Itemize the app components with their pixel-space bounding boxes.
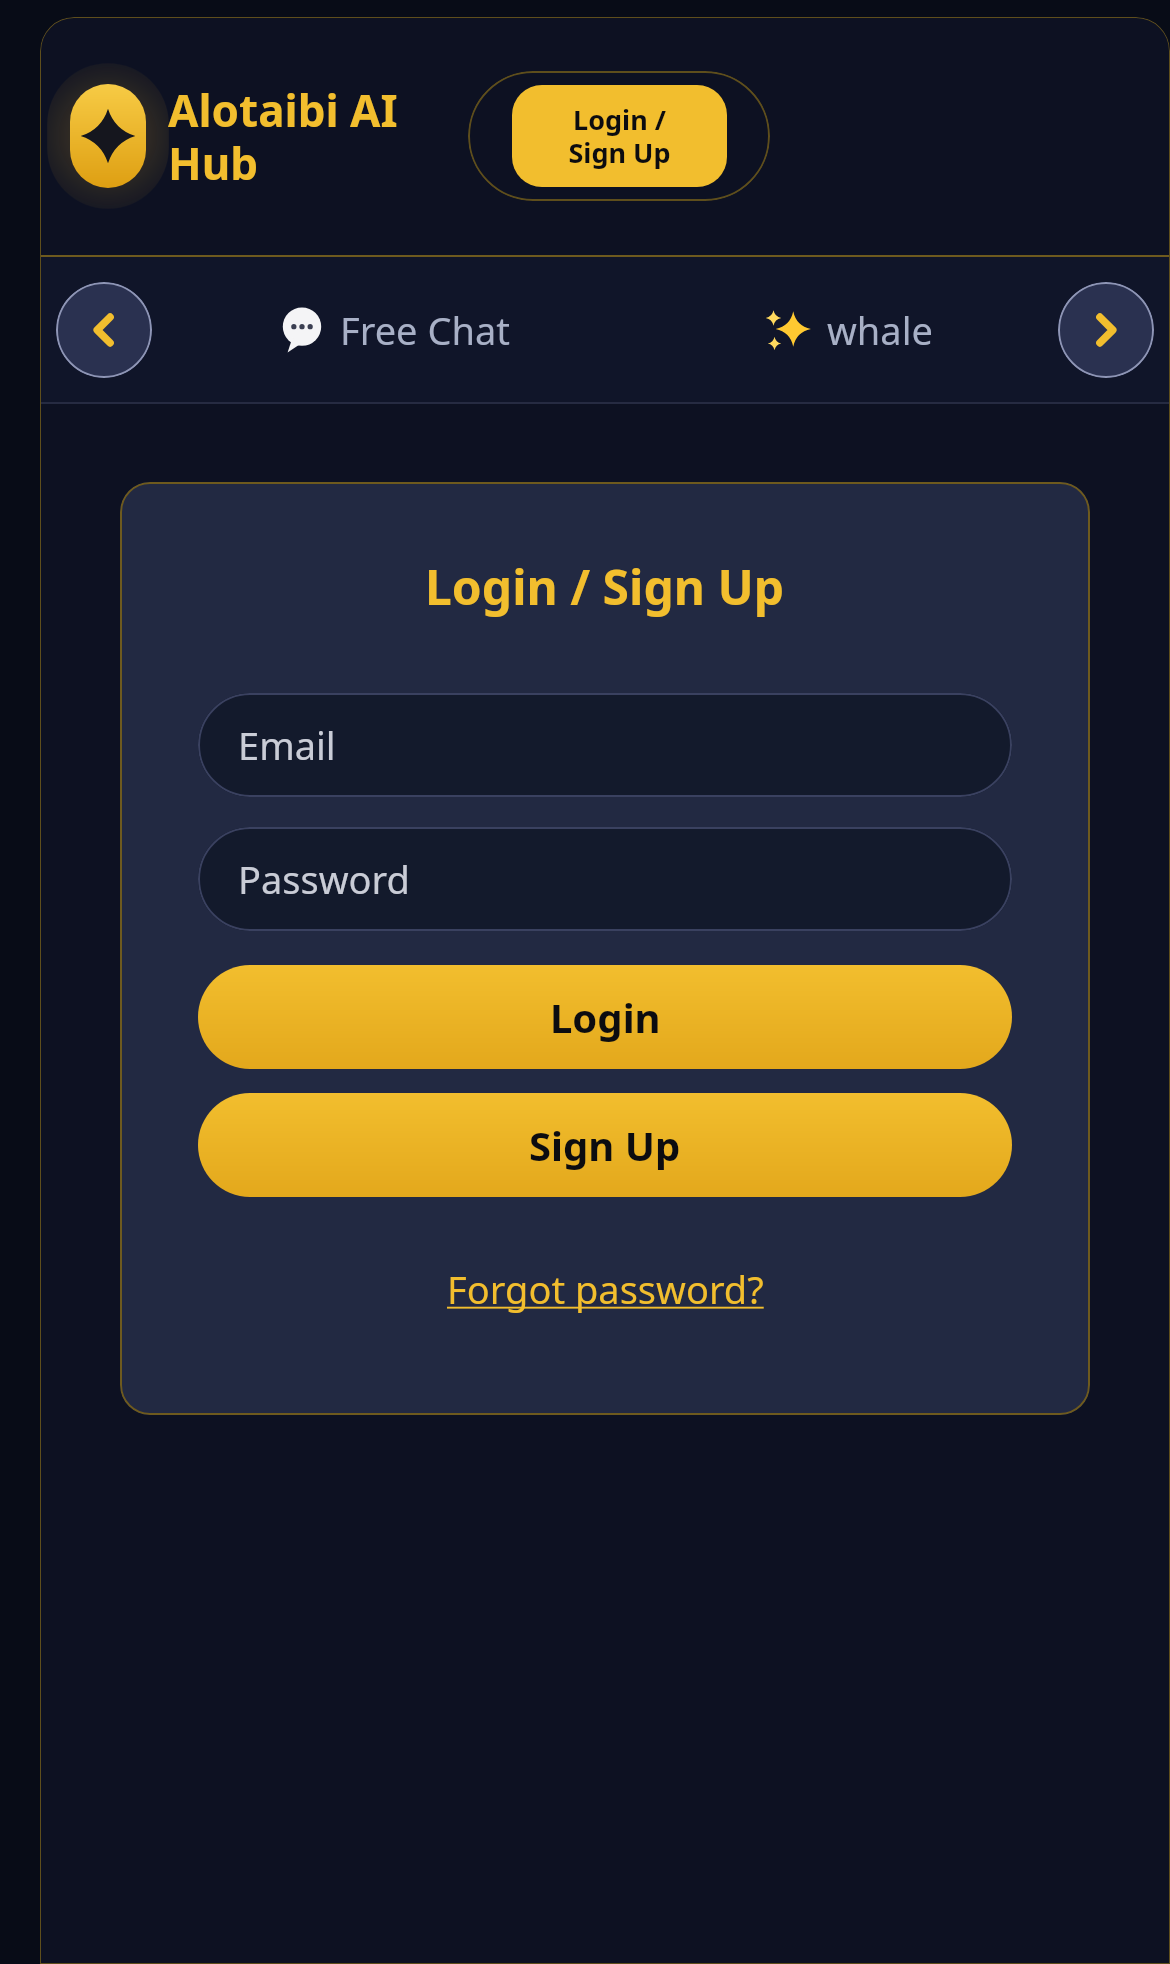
staticText: Login bbox=[550, 990, 661, 1044]
button[interactable]: whale bbox=[753, 294, 941, 366]
staticText: Alotaibi AI Hub bbox=[168, 80, 458, 192]
staticText: whale bbox=[827, 304, 933, 356]
button[interactable]: Next bbox=[1058, 282, 1154, 378]
staticText: Login / Sign Up bbox=[425, 554, 785, 619]
button[interactable]: Email bbox=[198, 693, 1012, 797]
button[interactable]: Login / Sign Up bbox=[512, 85, 727, 187]
button[interactable]: Forgot password? bbox=[441, 1259, 770, 1319]
button[interactable]: Password bbox=[198, 827, 1012, 931]
staticText: Forgot password? bbox=[447, 1263, 764, 1315]
button[interactable]: Previous bbox=[56, 282, 152, 378]
staticText: Password bbox=[238, 853, 410, 905]
button[interactable]: Free Chat bbox=[270, 294, 518, 366]
staticText: Login / Sign Up bbox=[568, 101, 671, 171]
button[interactable]: Sign Up bbox=[198, 1093, 1012, 1197]
staticText: Email bbox=[238, 719, 336, 771]
staticText: Sign Up bbox=[529, 1118, 681, 1172]
button[interactable]: Login bbox=[198, 965, 1012, 1069]
staticText: Free Chat bbox=[340, 304, 510, 356]
